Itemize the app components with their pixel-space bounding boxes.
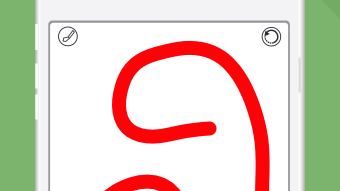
- button[interactable]: Start over: [261, 26, 282, 47]
- button[interactable]: Brush: [57, 26, 78, 47]
